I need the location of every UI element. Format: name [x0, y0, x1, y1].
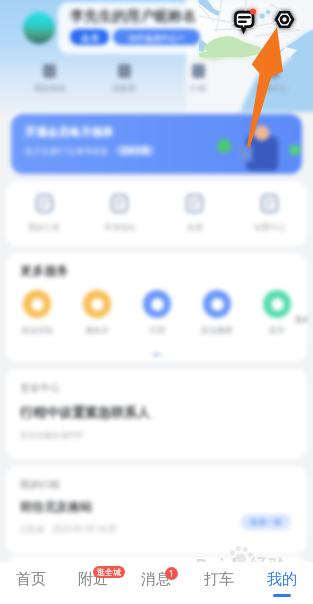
button[interactable]: 我的 — [250, 562, 313, 604]
button[interactable]: 我的订单 — [6, 194, 82, 246]
staticText: 行程 — [190, 83, 206, 93]
staticText: 前往北京南站 — [20, 499, 92, 514]
button[interactable]: Messages — [233, 9, 255, 31]
staticText: 出行会员中心 > — [129, 32, 184, 43]
button[interactable]: 开通会员每月领券 — [11, 114, 302, 174]
staticText: 常用地址 — [104, 222, 136, 232]
button[interactable]: 打车 — [187, 562, 250, 604]
button[interactable]: 消息 — [124, 562, 187, 604]
staticText: 打车 — [204, 570, 234, 589]
button[interactable]: 优惠券 — [87, 64, 161, 93]
button[interactable]: 我的行程 — [6, 466, 307, 554]
button[interactable]: Settings — [275, 10, 294, 29]
staticText: 货运搬家 — [201, 325, 233, 335]
button[interactable]: Settings — [275, 10, 294, 29]
staticText: 已完成 — [20, 524, 44, 534]
staticText: 客服中心 — [256, 83, 288, 93]
button[interactable]: 首页 — [0, 562, 62, 604]
staticText: 首月仅需0.1元尊享权益 — [25, 145, 109, 156]
staticText: 再来一单 — [250, 517, 282, 527]
button[interactable]: 客服中心 — [235, 64, 309, 93]
staticText: 我的 — [267, 570, 297, 589]
staticText: 会员 — [81, 32, 99, 43]
button[interactable]: 安全中心 — [6, 369, 307, 459]
staticText: 我的钱包 — [34, 83, 66, 93]
button[interactable]: 代驾 — [127, 290, 187, 335]
staticText: 发票 — [187, 222, 203, 232]
staticText: 行程中设置紧急联系人 — [20, 404, 150, 420]
staticText: 附近 — [78, 570, 108, 589]
staticText: 立即开通 — [121, 146, 149, 155]
staticText: Baidu经验 — [195, 553, 288, 579]
staticText: 更多服务 — [20, 263, 68, 278]
button[interactable]: 租车 — [247, 290, 307, 335]
staticText: 优惠券 — [112, 83, 136, 93]
button[interactable]: 货运搬家 — [187, 290, 247, 335]
button[interactable]: Avatar — [23, 12, 55, 44]
staticText: 逛全城 — [97, 567, 121, 577]
staticText: 租车 — [269, 325, 285, 335]
staticText: 李先生的用户昵称名 — [70, 8, 196, 26]
staticText: 设置中心 — [254, 222, 286, 232]
button[interactable]: 发票 — [157, 194, 232, 246]
button[interactable]: 设置中心 — [232, 194, 307, 246]
staticText: 更多 — [295, 315, 307, 324]
staticText: 代驾 — [149, 325, 165, 335]
staticText: 安全功能全面守护 — [20, 430, 84, 440]
staticText: 开通会员每月领券 — [25, 125, 113, 139]
staticText: 1 — [169, 568, 174, 579]
button[interactable]: 我的钱包 — [12, 64, 87, 93]
button[interactable]: 顺风车 — [67, 290, 127, 335]
staticText: jingyan.baidu.com — [196, 573, 266, 584]
staticText: 安全中心 — [20, 381, 60, 394]
staticText: 加油充电 — [21, 325, 53, 335]
button[interactable]: 行程 — [161, 64, 235, 93]
staticText: 顺风车 — [85, 325, 109, 335]
staticText: 我的订单 — [28, 222, 60, 232]
staticText: 我的行程 — [20, 478, 60, 491]
staticText: 消息 — [141, 570, 171, 589]
button[interactable]: Messages — [233, 9, 255, 31]
button[interactable]: 附近 — [62, 562, 124, 604]
button[interactable]: 常用地址 — [82, 194, 157, 246]
staticText: 2023-05-18 14:20 — [52, 523, 117, 534]
staticText: 首页 — [16, 570, 46, 589]
button[interactable]: 加油充电 — [6, 290, 67, 335]
